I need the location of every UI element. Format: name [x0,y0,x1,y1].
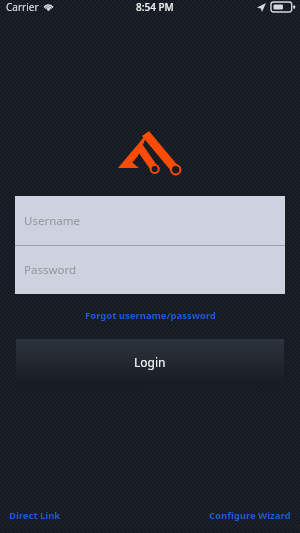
other: Wifi [43,2,54,13]
staticText: Login [134,354,166,370]
staticText: 8:54 PM [136,0,174,14]
button[interactable]: Forgot username/password [0,307,300,323]
other: Location [257,3,266,12]
staticText: Username [24,213,80,229]
staticText: Forgot username/password [85,309,216,322]
button[interactable]: Username [15,196,285,245]
staticText: Carrier [6,0,39,14]
button[interactable]: Configure Wizard [206,505,294,526]
staticText: Password [24,262,77,278]
staticText: Direct Link [9,509,61,522]
button[interactable]: Login [16,339,284,385]
button[interactable]: Password [15,246,285,294]
staticText: Configure Wizard [209,509,291,522]
button[interactable]: Direct Link [6,505,64,526]
other: Battery [271,2,294,12]
